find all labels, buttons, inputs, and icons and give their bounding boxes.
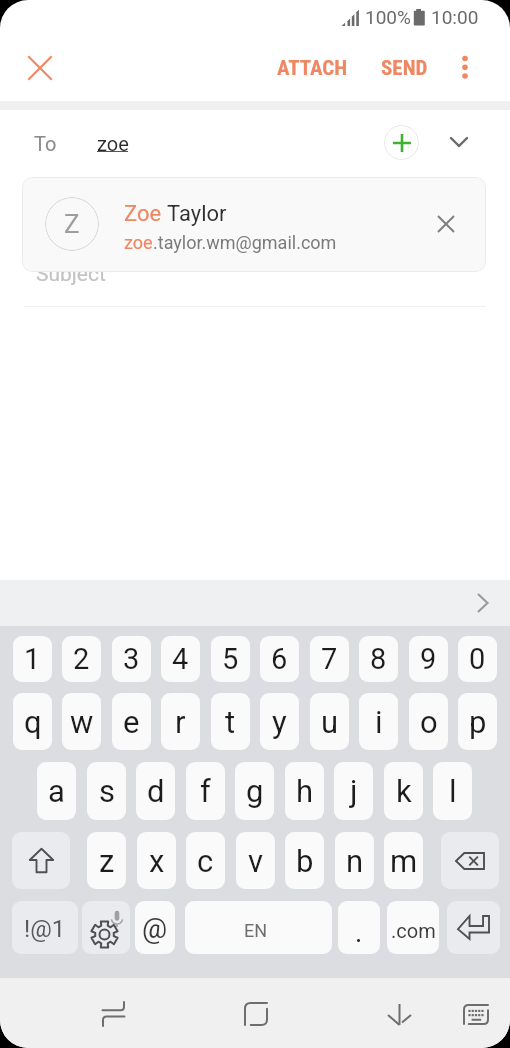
staticText: EN (244, 920, 268, 941)
staticText: q (24, 704, 42, 740)
button[interactable]: EN (185, 901, 332, 954)
button[interactable]: v (236, 832, 275, 889)
button[interactable]: 2 (62, 636, 101, 682)
staticText: y (272, 704, 287, 740)
staticText: 3 (123, 642, 140, 676)
button[interactable]: c (186, 832, 225, 889)
staticText: t (225, 704, 236, 740)
button[interactable]: w (62, 693, 101, 750)
staticText: c (197, 843, 214, 879)
button[interactable]: j (334, 762, 373, 820)
staticText: 5 (222, 642, 239, 676)
button[interactable]: d (136, 762, 175, 820)
button[interactable]: r (161, 693, 200, 750)
button[interactable]: 9 (409, 636, 448, 682)
button[interactable]: Recent apps (85, 992, 141, 1036)
button[interactable]: Hide keyboard (371, 992, 427, 1036)
staticText: i (375, 704, 383, 740)
staticText: s (99, 773, 115, 809)
button[interactable]: e (112, 693, 151, 750)
button[interactable]: z (87, 832, 126, 889)
button[interactable]: @ (135, 901, 175, 954)
button[interactable]: s (87, 762, 126, 820)
button[interactable]: t (211, 693, 250, 750)
staticText: 7 (321, 642, 338, 676)
staticText: 1 (24, 642, 41, 676)
button[interactable]: h (285, 762, 324, 820)
staticText: j (350, 773, 358, 809)
staticText: h (296, 773, 314, 809)
button[interactable]: ATTACH (262, 48, 362, 88)
staticText: zoe (124, 232, 153, 253)
button[interactable]: 5 (211, 636, 250, 682)
button[interactable]: Remove recipient (428, 206, 464, 242)
button[interactable]: . (338, 901, 380, 954)
staticText: x (149, 843, 165, 879)
staticText: 9 (420, 642, 437, 676)
button[interactable]: .com (387, 901, 439, 954)
button[interactable]: 4 (161, 636, 200, 682)
staticText: @ (142, 912, 168, 945)
staticText: Taylor (167, 201, 227, 227)
button[interactable]: More suggestions (466, 586, 500, 620)
staticText: m (390, 843, 418, 879)
staticText: 2 (73, 642, 90, 676)
staticText: g (246, 773, 264, 809)
button[interactable]: Keyboard (448, 992, 504, 1036)
button[interactable]: Home (228, 992, 284, 1036)
button[interactable]: Add recipient (384, 125, 419, 160)
button[interactable]: x (137, 832, 176, 889)
button[interactable]: Enter (447, 901, 500, 954)
button[interactable]: f (186, 762, 225, 820)
staticText: Zoe (124, 201, 167, 227)
staticText: Subject (36, 262, 106, 287)
staticText: z (99, 843, 115, 879)
button[interactable]: Close (17, 45, 62, 90)
button[interactable]: More options (446, 48, 484, 88)
staticText: d (147, 773, 165, 809)
button[interactable]: Keyboard settings (82, 901, 130, 954)
button[interactable]: 6 (260, 636, 299, 682)
button[interactable]: o (409, 693, 448, 750)
button[interactable]: a (37, 762, 76, 820)
button[interactable]: i (359, 693, 398, 750)
button[interactable]: 3 (112, 636, 151, 682)
staticText: zoe (97, 132, 129, 155)
button[interactable]: SEND (368, 48, 440, 88)
button[interactable]: q (13, 693, 52, 750)
button[interactable]: u (310, 693, 349, 750)
staticText: ATTACH (277, 56, 348, 81)
button[interactable]: l (433, 762, 472, 820)
button[interactable]: 7 (310, 636, 349, 682)
button[interactable]: Backspace (441, 832, 499, 889)
staticText: u (321, 704, 339, 740)
staticText: 4 (172, 642, 189, 676)
staticText: p (469, 704, 487, 740)
staticText: .com (391, 919, 436, 942)
button[interactable]: b (285, 832, 324, 889)
staticText: .taylor.wm@gmail.com (153, 232, 337, 253)
button[interactable]: 1 (13, 636, 52, 682)
button[interactable]: g (235, 762, 274, 820)
staticText: 10:00 (431, 6, 479, 28)
button[interactable]: Expand recipients (440, 124, 478, 160)
button[interactable]: Z (22, 177, 486, 272)
staticText: SEND (381, 56, 428, 81)
staticText: r (175, 704, 186, 740)
button[interactable]: n (335, 832, 374, 889)
button[interactable]: Shift (12, 832, 70, 889)
button[interactable]: !@1 (12, 901, 78, 954)
button[interactable]: m (384, 832, 423, 889)
staticText: 0 (469, 642, 486, 676)
button[interactable]: k (384, 762, 423, 820)
button[interactable]: 0 (458, 636, 497, 682)
staticText: Z (64, 209, 80, 239)
button[interactable]: 8 (359, 636, 398, 682)
button[interactable]: p (458, 693, 497, 750)
staticText: l (449, 773, 457, 809)
staticText: !@1 (24, 915, 66, 943)
staticText: v (248, 843, 264, 879)
staticText: b (296, 843, 314, 879)
staticText: k (396, 773, 412, 809)
button[interactable]: y (260, 693, 299, 750)
